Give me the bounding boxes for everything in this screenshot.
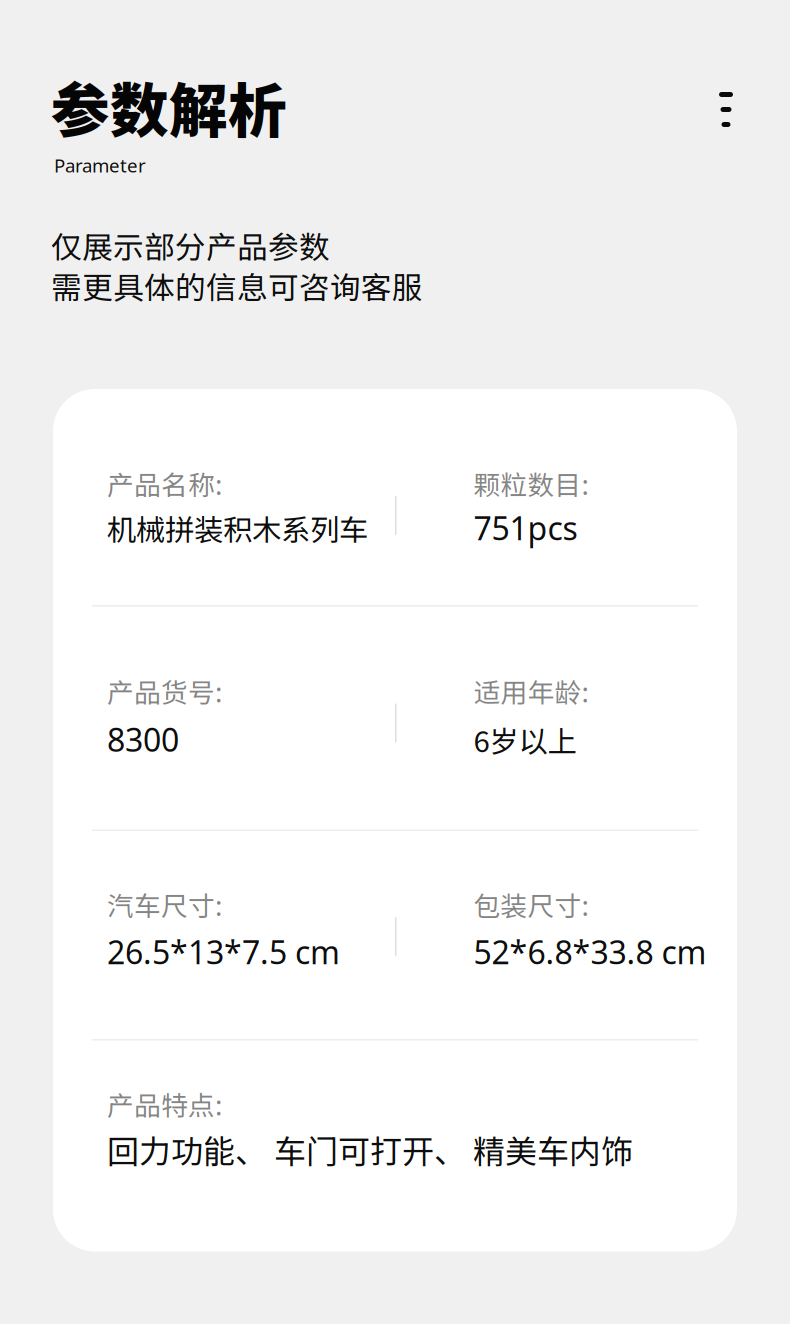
button[interactable]: More options bbox=[709, 64, 743, 137]
staticText: 仅展示部分产品参数 bbox=[51, 223, 330, 267]
staticText: 产品名称: bbox=[107, 464, 222, 503]
staticText: 52*6.8*33.8 cm bbox=[473, 931, 706, 973]
staticText: 产品特点: bbox=[107, 1084, 222, 1123]
staticText: 需更具体的信息可咨询客服 bbox=[51, 263, 423, 308]
staticText: 包装尺寸: bbox=[473, 885, 588, 924]
staticText: 751pcs bbox=[473, 507, 577, 549]
staticText: 产品货号: bbox=[107, 671, 222, 710]
staticText: 26.5*13*7.5 cm bbox=[107, 931, 340, 973]
staticText: Parameter bbox=[54, 153, 146, 178]
staticText: 6岁以上 bbox=[473, 718, 576, 761]
staticText: 适用年龄: bbox=[473, 671, 588, 710]
staticText: 参数解析 bbox=[51, 64, 287, 149]
staticText: 回力功能、 车门可打开、 精美车内饰 bbox=[107, 1126, 633, 1172]
staticText: 8300 bbox=[107, 718, 179, 761]
staticText: 机械拼装积木系列车 bbox=[107, 507, 368, 549]
staticText: 汽车尺寸: bbox=[107, 885, 222, 924]
staticText: 颗粒数目: bbox=[473, 464, 588, 503]
